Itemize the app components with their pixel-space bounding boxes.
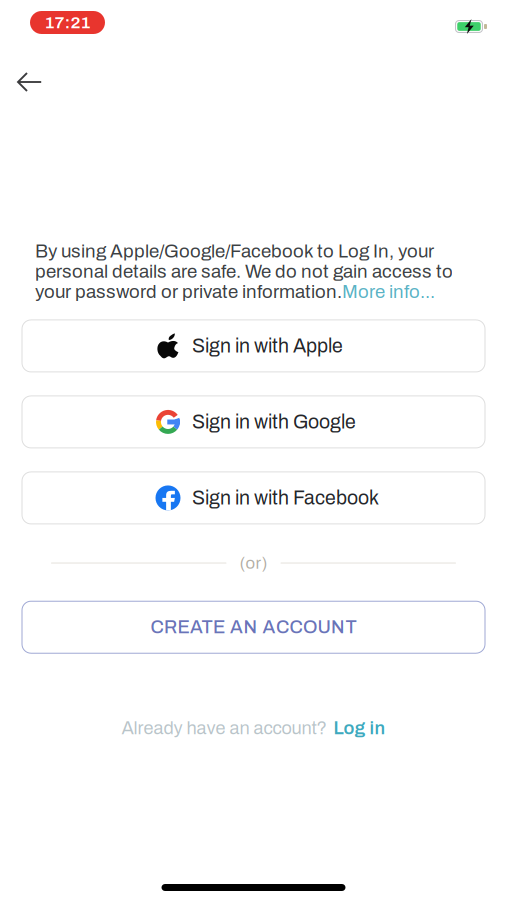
staticText: Sign in with Google [192, 411, 356, 432]
button[interactable]: CREATE AN ACCOUNT [22, 601, 485, 653]
staticText: Sign in with Apple [192, 335, 343, 356]
button[interactable]: Sign in with Google [22, 396, 485, 448]
staticText: Log in [333, 718, 385, 738]
staticText: Sign in with Facebook [192, 487, 379, 508]
staticText: CREATE AN ACCOUNT [150, 617, 356, 637]
staticText: 17:21 [44, 13, 90, 32]
button[interactable]: Sign in with Facebook [22, 472, 485, 524]
button[interactable]: Back [0, 58, 59, 106]
button[interactable]: Sign in with Apple [22, 320, 485, 372]
staticText: By using Apple/Google/Facebook to Log In… [35, 241, 453, 302]
staticText: Already have an account? [121, 718, 326, 738]
button[interactable]: Already have an account? [109, 710, 397, 746]
staticText: (or) [239, 554, 267, 572]
